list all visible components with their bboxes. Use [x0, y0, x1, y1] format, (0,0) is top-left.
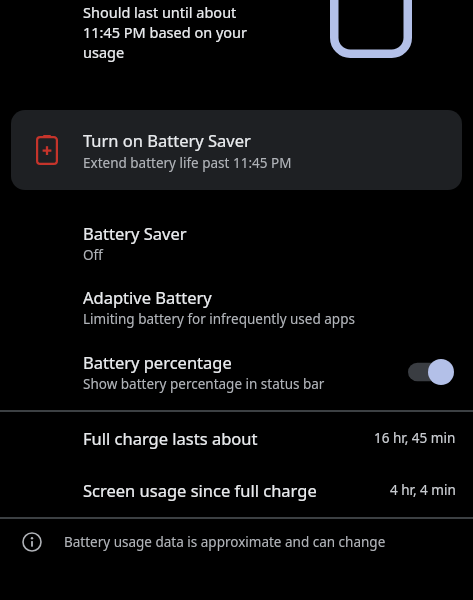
button[interactable]: Battery Saver	[0, 212, 473, 274]
button[interactable]: Full charge lasts about	[0, 412, 473, 464]
staticText: 16 hr, 45 min	[374, 429, 456, 447]
button[interactable]: Battery percentage	[0, 340, 473, 404]
staticText: Battery percentage	[83, 351, 232, 373]
staticText: Off	[83, 246, 103, 264]
staticText: Should last until about 11:45 PM based o…	[83, 2, 248, 62]
button[interactable]: Screen usage since full charge	[0, 464, 473, 516]
staticText: Full charge lasts about	[83, 427, 374, 449]
button[interactable]: Adaptive Battery	[0, 274, 473, 340]
staticText: Turn on Battery Saver	[83, 129, 251, 151]
staticText: Battery Saver	[83, 222, 187, 244]
staticText: Show battery percentage in status bar	[83, 375, 325, 393]
button[interactable]: Turn on Battery Saver	[11, 110, 462, 190]
staticText: Screen usage since full charge	[83, 479, 390, 501]
staticText: Limiting battery for infrequently used a…	[83, 310, 355, 328]
staticText: 4 hr, 4 min	[390, 481, 456, 499]
staticText: Battery usage data is approximate and ca…	[64, 533, 386, 551]
button[interactable]: Battery usage data is approximate and ca…	[0, 519, 473, 565]
staticText: Adaptive Battery	[83, 286, 212, 308]
staticText: Extend battery life past 11:45 PM	[83, 154, 292, 172]
button[interactable]: Battery percentage toggle	[405, 357, 457, 387]
